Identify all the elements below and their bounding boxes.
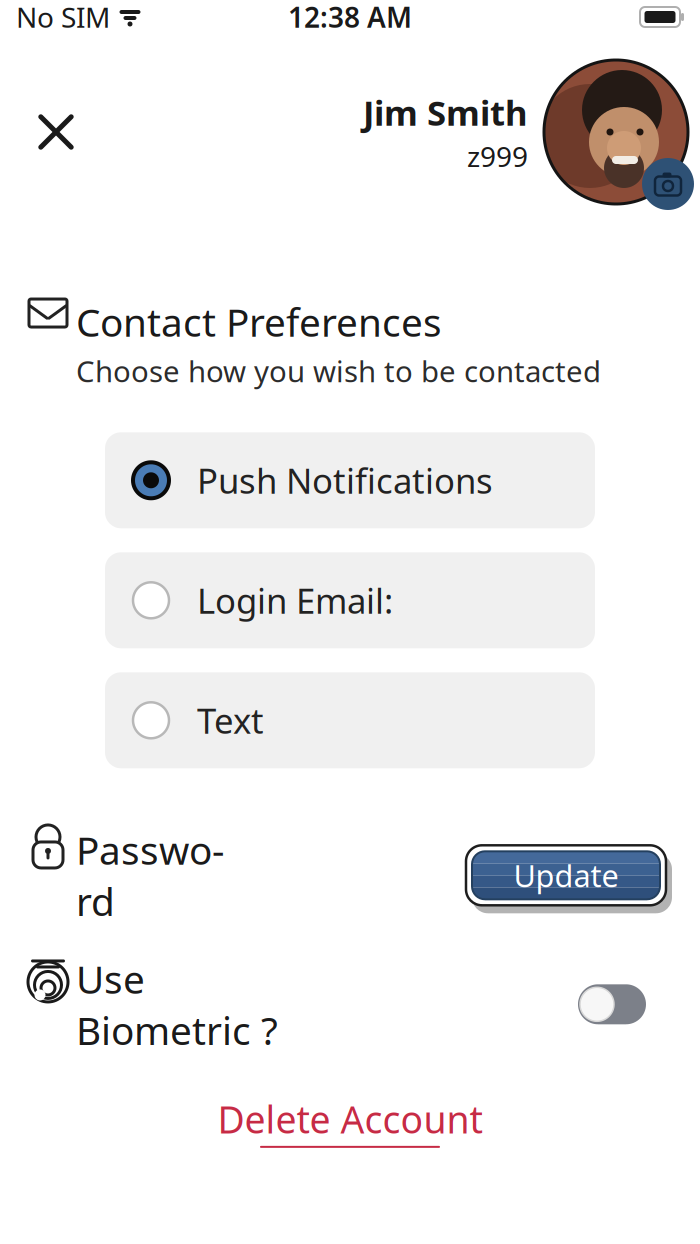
staticText: z999 [467, 137, 528, 175]
staticText: Password [76, 824, 224, 927]
staticText: Text [197, 697, 264, 743]
staticText: Login Email: [197, 577, 393, 623]
staticText: Update [513, 855, 618, 896]
button[interactable]: Close [30, 106, 82, 158]
button[interactable]: Push Notifications [105, 432, 595, 528]
button[interactable]: Text [105, 672, 595, 768]
staticText: Push Notifications [197, 457, 493, 503]
staticText: 12:38 AM [288, 0, 412, 36]
staticText: Delete Account [217, 1094, 482, 1144]
button[interactable]: Change profile photo [642, 158, 694, 210]
button[interactable]: Use Biometric [576, 982, 648, 1026]
staticText: Jim Smith [363, 89, 528, 135]
staticText: Contact Preferences [76, 296, 442, 347]
button[interactable]: Delete Account [207, 1090, 492, 1152]
staticText: Choose how you wish to be contacted [76, 351, 601, 390]
button[interactable]: Update [460, 837, 672, 913]
staticText: Use Biometric ? [76, 953, 278, 1056]
button[interactable]: Login Email: [105, 552, 595, 648]
staticText: No SIM [16, 0, 110, 36]
